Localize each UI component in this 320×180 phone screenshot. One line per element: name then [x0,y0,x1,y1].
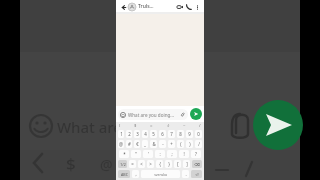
button[interactable]: _ [142,140,148,148]
staticText: - [162,141,164,147]
staticText: $ [66,152,76,175]
staticText: / [198,141,200,147]
staticText: ' [148,151,149,157]
staticText: [ [177,161,179,167]
button[interactable]: ⌫ [192,160,202,168]
button[interactable]: ] [183,160,190,168]
button[interactable]: Truls… [138,3,175,10]
button[interactable]: 8 [177,130,184,138]
button[interactable]: 9 [186,130,193,138]
staticText: 3 [136,131,139,137]
button[interactable]: + [168,140,175,148]
button[interactable]: 6 [159,130,166,138]
button[interactable]: { [156,160,163,168]
button[interactable]: Send [190,108,202,120]
button[interactable]: [ [174,160,181,168]
staticText: . [185,171,187,177]
button[interactable]: ! [179,150,189,158]
staticText: _ [144,141,146,147]
staticText: 1/2 [120,162,126,167]
button[interactable]: 5 [150,130,157,138]
staticText: = [131,161,134,167]
staticText: } [168,161,170,167]
button[interactable]: ⏎ [191,170,202,178]
staticText: ⌫ [194,162,200,167]
staticText: svenska [154,172,167,177]
button[interactable]: ABC [118,170,130,178]
staticText: ! [183,151,185,157]
staticText: " [135,151,137,157]
button[interactable]: @ [118,140,124,148]
button[interactable]: ( [119,123,121,129]
staticText: 2 [128,131,131,137]
staticText: , [135,171,137,177]
button[interactable]: ; [167,150,177,158]
staticText: < [140,161,143,167]
button[interactable]: Attach [179,111,186,118]
button[interactable]: 0 [195,130,202,138]
button[interactable]: 1 [118,130,124,138]
staticText: ; [171,151,173,157]
button[interactable]: < [138,160,145,168]
button[interactable]: € [134,140,140,148]
staticText: ( [180,141,182,147]
staticText: # [128,141,131,147]
staticText: @ [119,141,123,147]
button[interactable]: :) [167,123,170,129]
button[interactable]: 7 [168,130,175,138]
button[interactable]: What are you doing... [118,109,188,120]
button[interactable]: ' [143,150,153,158]
staticText: : [159,151,161,157]
staticText: 9 [188,131,191,137]
staticText: What are you doing... [128,112,179,118]
button[interactable]: = [129,160,136,168]
staticText: 8 [179,131,182,137]
button[interactable]: 2 [126,130,132,138]
button[interactable]: : [155,150,165,158]
staticText: * [123,151,126,157]
button[interactable]: & [150,140,157,148]
button[interactable]: # [126,140,132,148]
staticText: ? [195,151,197,157]
staticText: ) [189,141,191,147]
staticText: ABC [121,172,128,177]
button[interactable]: ~ [183,123,186,129]
button[interactable]: 4 [142,130,148,138]
staticText: > [149,161,152,167]
button[interactable]: / [199,123,201,129]
button[interactable]: Back [119,3,127,11]
button[interactable]: Video call [175,2,184,11]
button[interactable]: * [119,150,129,158]
button[interactable]: Call [184,2,193,11]
staticText: 0 [197,131,200,137]
button[interactable]: 1/2 [118,160,127,168]
button[interactable]: / [195,140,202,148]
staticText: € [136,141,139,147]
button[interactable]: svenska [141,170,180,178]
button[interactable]: ? [191,150,201,158]
button[interactable]: - [159,140,166,148]
button[interactable]: More options [193,3,201,11]
staticText: 1 [120,131,123,137]
button[interactable]: 3 [134,130,140,138]
button[interactable]: ) [186,140,193,148]
staticText: 5 [152,131,155,137]
button[interactable]: } [165,160,172,168]
staticText: ] [186,161,188,167]
button[interactable]: $ [134,123,137,129]
staticText: 6 [161,131,164,137]
staticText: @ [100,155,113,174]
staticText: ⏎ [195,172,199,177]
staticText: 7 [170,131,173,137]
button[interactable]: ( [177,140,184,148]
button[interactable]: = [150,123,153,129]
staticText: { [159,161,161,167]
staticText: 4 [144,131,147,137]
button[interactable]: " [131,150,141,158]
staticText: & [152,141,156,147]
button[interactable]: > [147,160,154,168]
button[interactable]: . [182,170,189,178]
button[interactable]: , [132,170,139,178]
staticText: What are [57,117,122,137]
staticText: + [170,141,173,147]
